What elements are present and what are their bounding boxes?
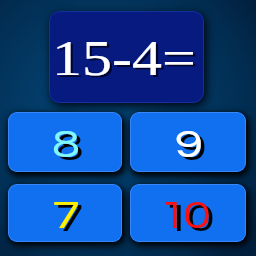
button[interactable]: 10: [130, 184, 246, 242]
staticText: 9: [175, 124, 203, 165]
button[interactable]: 7: [8, 184, 122, 242]
button[interactable]: 8: [8, 112, 122, 172]
staticText: 15-4=: [54, 32, 198, 87]
staticText: 7: [52, 195, 80, 236]
staticText: 10: [163, 198, 211, 239]
button[interactable]: 9: [130, 112, 246, 172]
button[interactable]: 15-4=: [49, 11, 204, 103]
staticText: 8: [56, 127, 84, 168]
staticText: 7: [56, 198, 84, 239]
staticText: 9: [179, 127, 207, 168]
staticText: 10: [159, 195, 207, 236]
staticText: 8: [52, 124, 80, 165]
staticText: 15-4=: [52, 30, 196, 85]
